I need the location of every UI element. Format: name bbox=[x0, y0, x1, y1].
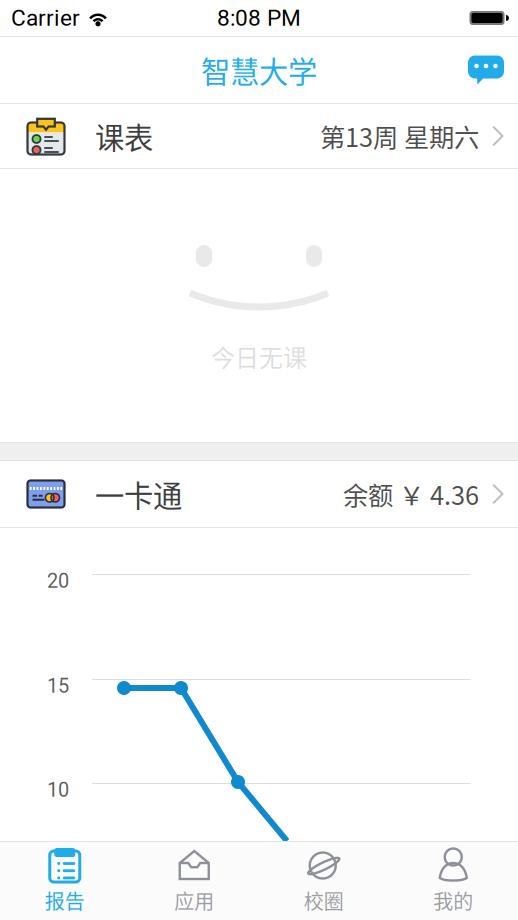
staticText: 20 bbox=[47, 569, 69, 593]
staticText: 8:08 PM bbox=[217, 5, 301, 31]
staticText: 智慧大学 bbox=[201, 49, 317, 91]
button[interactable]: 课表 bbox=[0, 104, 518, 168]
staticText: Carrier bbox=[11, 5, 80, 31]
staticText: 报告 bbox=[45, 886, 85, 915]
staticText: 一卡通 bbox=[95, 473, 182, 515]
button[interactable]: Messages bbox=[448, 39, 518, 100]
staticText: 今日无课 bbox=[211, 339, 307, 374]
staticText: 15 bbox=[47, 674, 69, 698]
staticText: 我的 bbox=[433, 886, 473, 915]
button[interactable]: 我的 bbox=[388, 842, 518, 920]
button[interactable]: 报告 bbox=[0, 842, 129, 920]
button[interactable]: 校圈 bbox=[259, 842, 388, 920]
staticText: 应用 bbox=[174, 886, 214, 915]
staticText: 第13周 星期六 bbox=[320, 118, 479, 154]
staticText: 10 bbox=[47, 778, 69, 802]
staticText: 课表 bbox=[95, 115, 153, 157]
staticText: 校圈 bbox=[304, 886, 344, 915]
button[interactable]: 应用 bbox=[129, 842, 259, 920]
staticText: 余额 ￥ 4.36 bbox=[343, 476, 479, 512]
button[interactable]: 一卡通 bbox=[0, 461, 518, 527]
